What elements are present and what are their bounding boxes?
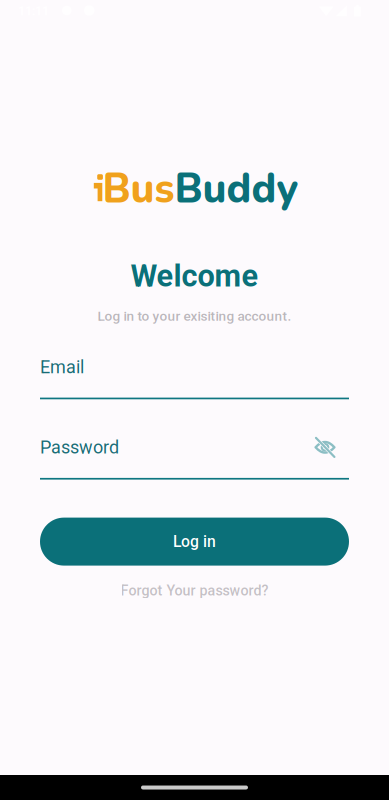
staticText: Bus [102, 161, 174, 217]
staticText: Forgot Your password? [120, 582, 268, 599]
staticText: Log in [173, 532, 216, 551]
button[interactable]: Forgot Your password? [120, 582, 268, 600]
button[interactable]: Log in [40, 518, 349, 566]
staticText: Welcome [130, 258, 258, 294]
button[interactable]: Show password [314, 436, 349, 458]
staticText: Password [40, 437, 119, 458]
staticText: Email [40, 356, 84, 378]
staticText: Log in to your exisiting account. [97, 308, 291, 324]
staticText: Buddy [174, 161, 298, 217]
